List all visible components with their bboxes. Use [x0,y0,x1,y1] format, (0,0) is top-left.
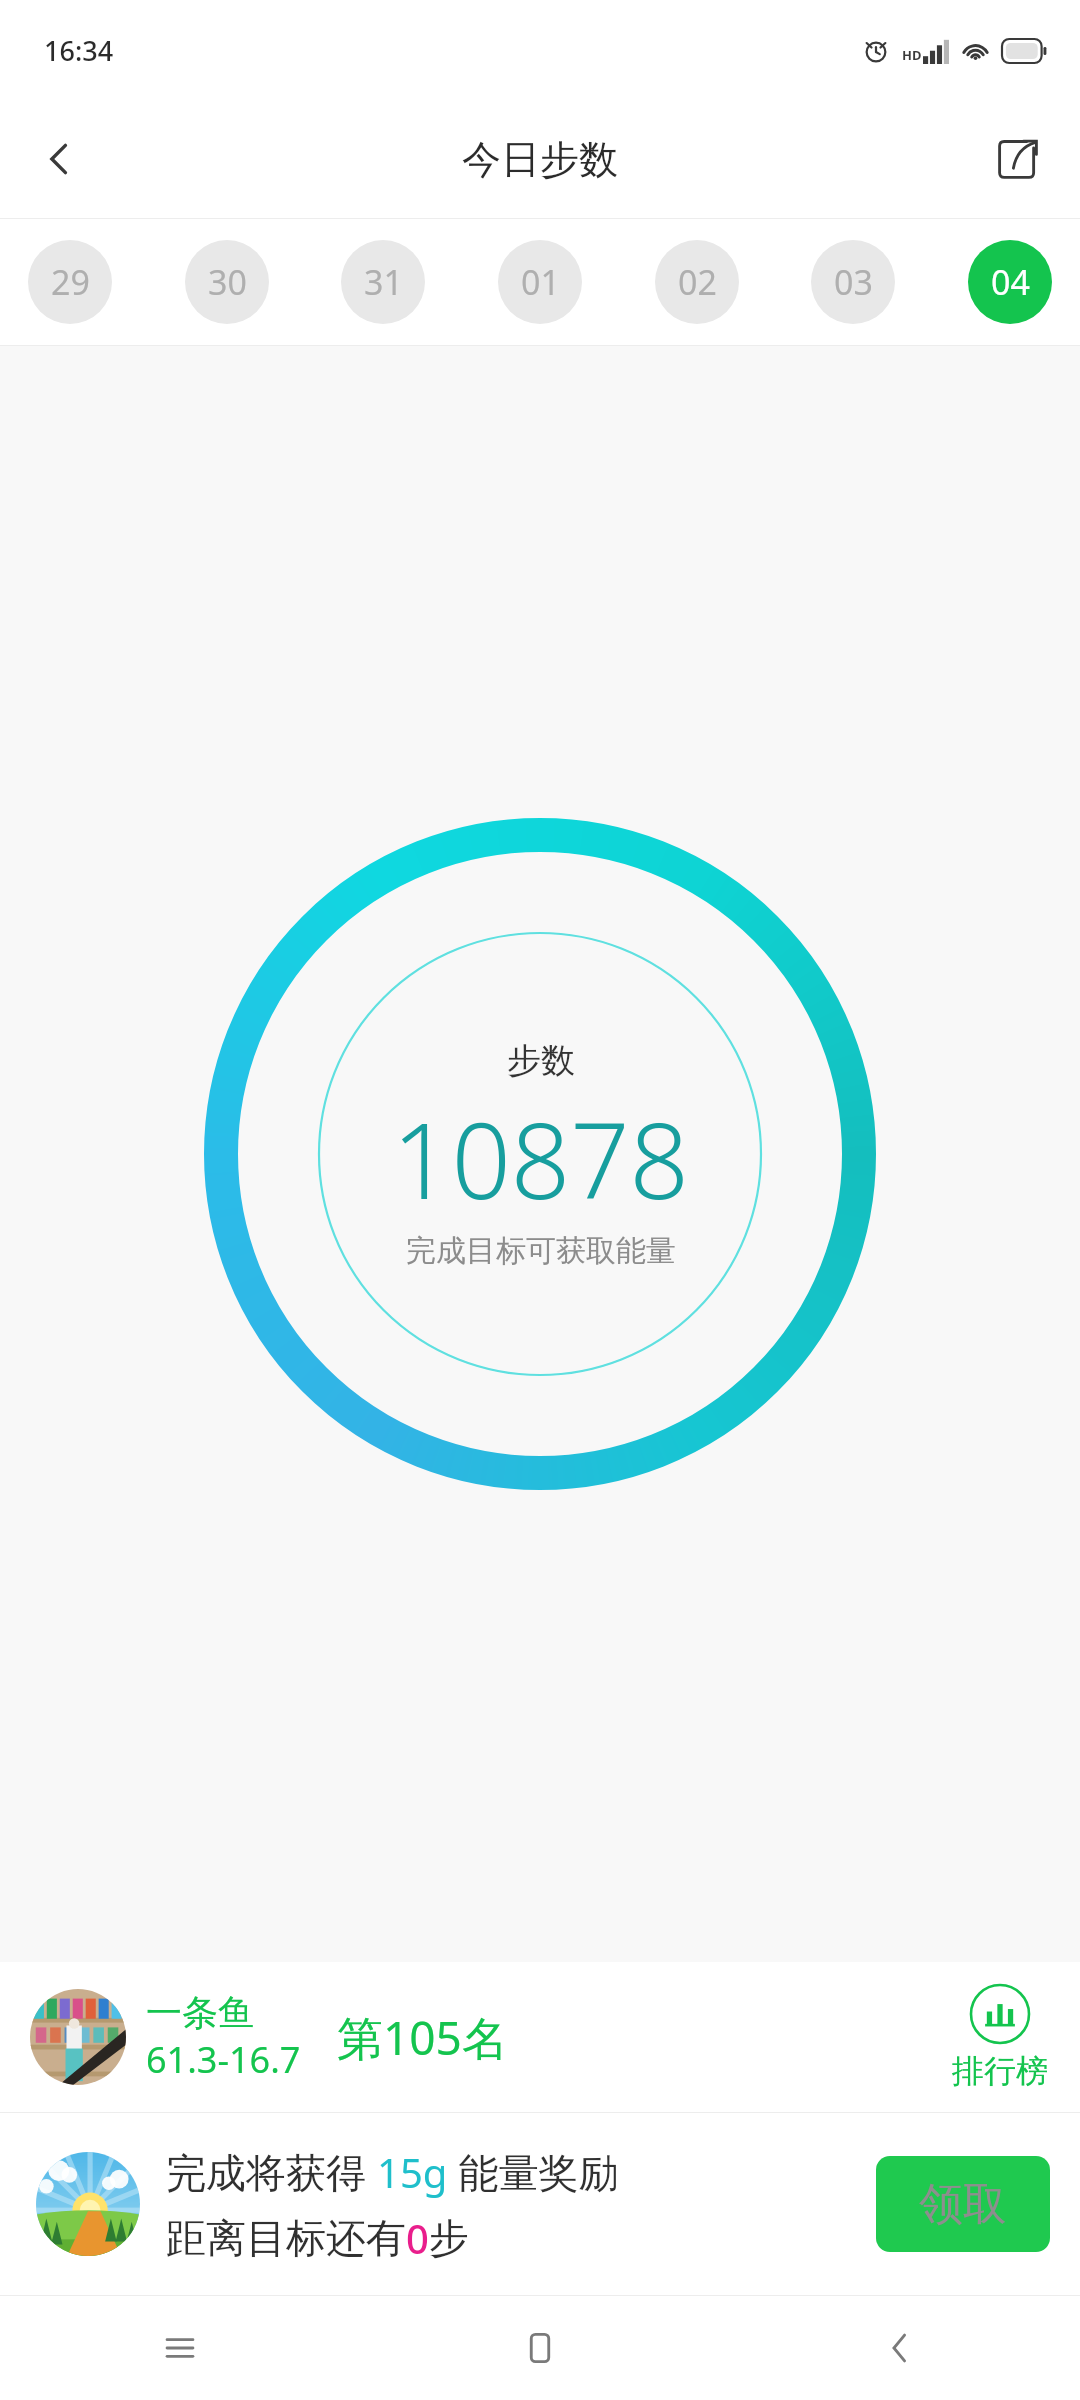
button[interactable]: 04 [968,240,1052,324]
button[interactable]: 领取 [876,2156,1050,2252]
staticText: HD [902,46,922,64]
staticText: 16:34 [44,32,114,69]
staticText: 距离目标还有 [166,2213,406,2263]
button[interactable]: 03 [811,240,895,324]
staticText: 完成将获得 [166,2144,377,2199]
staticText: 04 [991,259,1030,305]
button[interactable]: Recents [0,2296,360,2400]
staticText: 能量奖励 [448,2144,619,2199]
button[interactable]: 30 [185,240,269,324]
button[interactable]: 31 [341,240,425,324]
staticText: 01 [521,259,560,305]
staticText: 30 [208,259,247,305]
button[interactable]: 01 [498,240,582,324]
staticText: 02 [678,259,717,305]
staticText: 排行榜 [952,2051,1048,2091]
button[interactable]: 02 [655,240,739,324]
staticText: 15g [377,2145,448,2199]
staticText: 10878 [392,1088,689,1230]
button[interactable]: Back [720,2296,1080,2400]
staticText: 03 [834,259,873,305]
staticText: 0 [406,2211,429,2265]
staticText: 31 [364,259,403,305]
staticText: 步 [429,2213,469,2263]
staticText: 29 [51,259,90,305]
staticText: 今日步数 [462,135,618,184]
button[interactable]: Share [976,117,1060,201]
button[interactable]: Home [360,2296,720,2400]
staticText: 61.3-16.7 [146,2035,301,2084]
staticText: 第105名 [337,2006,508,2069]
staticText: 完成目标可获取能量 [406,1232,676,1270]
button[interactable]: 一条鱼 [0,1962,1080,2112]
button[interactable]: 29 [28,240,112,324]
button[interactable]: 排行榜 [942,1983,1058,2091]
staticText: 步数 [507,1039,575,1082]
staticText: 领取 [919,2177,1007,2232]
staticText: 一条鱼 [146,1990,254,2035]
button[interactable]: Back [18,117,102,201]
